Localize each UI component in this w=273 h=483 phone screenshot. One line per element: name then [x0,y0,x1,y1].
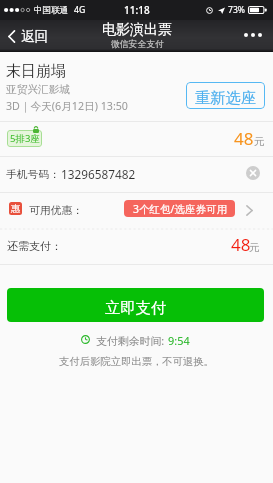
staticText: 返回 [21,28,49,45]
staticText: 支付后影院立即出票，不可退换。 [0,355,273,368]
staticText: 元 [254,135,265,148]
staticText: 9:54 [168,333,190,348]
staticText: 电影演出票 [102,21,172,39]
staticText: 支付剩余时间: [96,333,168,348]
staticText: 末日崩塌 [6,62,66,81]
button[interactable]: 惠 [0,192,273,227]
staticText: 亚贸兴汇影城 [6,83,71,96]
button[interactable]: 立即支付 [7,288,264,322]
staticText: 11:18 [124,3,150,17]
staticText: 元 [249,241,260,254]
staticText: 3D｜今天(6月12日) 13:50 [6,99,128,114]
staticText: 微信安全支付 [111,39,164,50]
staticText: 13296587482 [61,166,136,182]
staticText: 4G [74,4,86,16]
staticText: 还需支付： [7,239,62,253]
staticText: 手机号码： [6,168,60,182]
button[interactable]: 返回 [0,23,59,50]
staticText: 惠 [11,203,21,215]
staticText: 中国联通 [34,5,69,16]
staticText: 重新选座 [195,88,257,107]
staticText: 73% [228,4,245,16]
staticText: 立即支付 [105,298,167,317]
button[interactable]: Clear phone number [246,166,260,180]
button[interactable]: 重新选座 [186,82,265,109]
staticText: 48 [234,127,254,150]
staticText: 48 [231,233,251,256]
button[interactable]: More options [234,25,272,45]
staticText: 可用优惠： [29,204,83,218]
staticText: 5排3座 [10,132,40,145]
staticText: 3个红包/选座券可用 [133,202,227,216]
